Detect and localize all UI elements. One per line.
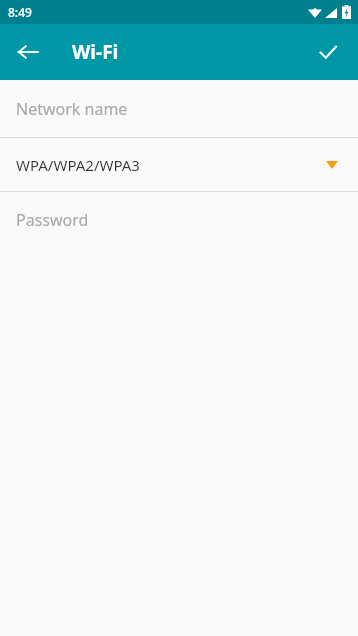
button[interactable]: Network name: [0, 80, 358, 137]
staticText: WPA/WPA2/WPA3: [16, 155, 140, 175]
button[interactable]: Navigate up: [4, 28, 52, 76]
button[interactable]: Password: [0, 192, 358, 247]
button[interactable]: WPA/WPA2/WPA3: [0, 138, 358, 191]
staticText: 8:49: [8, 4, 32, 20]
staticText: Password: [16, 209, 89, 231]
staticText: Wi-Fi: [72, 39, 119, 65]
staticText: Network name: [16, 98, 128, 120]
button[interactable]: Save: [304, 28, 352, 76]
